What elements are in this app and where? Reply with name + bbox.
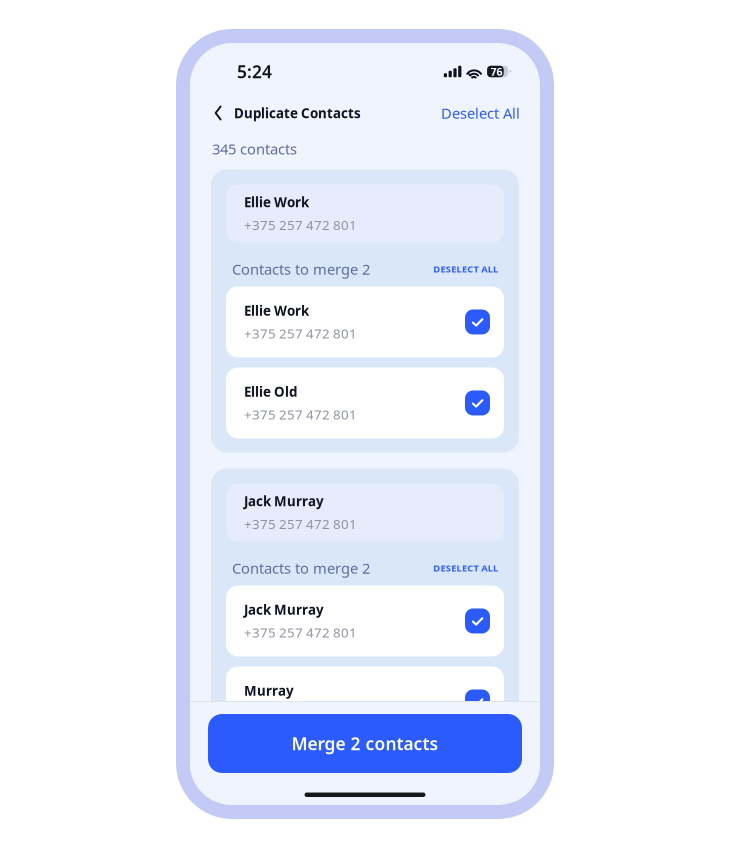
staticText: Duplicate Contacts (234, 104, 361, 122)
button[interactable]: Ellie Old (226, 367, 504, 438)
button[interactable]: Deselect contact (465, 309, 490, 334)
button[interactable]: DESELECT ALL (433, 263, 498, 275)
staticText: Ellie Work (244, 193, 309, 211)
button[interactable]: Jack Murray (226, 585, 504, 656)
button[interactable]: Ellie Work (226, 286, 504, 357)
staticText: +375 257 472 801 (244, 405, 357, 423)
button[interactable]: Jack Murray (226, 483, 504, 541)
staticText: 345 contacts (212, 139, 297, 158)
staticText: Ellie Old (244, 383, 297, 400)
staticText: Jack Murray (244, 492, 324, 510)
button[interactable]: Merge 2 contacts (208, 714, 522, 773)
staticText: Ellie Work (244, 302, 309, 319)
staticText: Merge 2 contacts (291, 732, 438, 755)
button[interactable]: Back (210, 98, 227, 128)
staticText: DESELECT ALL (433, 562, 498, 574)
staticText: +375 257 472 801 (244, 623, 357, 641)
button[interactable]: Ellie Work (226, 184, 504, 242)
staticText: DESELECT ALL (433, 263, 498, 275)
button[interactable]: DESELECT ALL (433, 562, 498, 574)
staticText: 76 (491, 64, 503, 79)
button[interactable]: Murray (226, 666, 504, 737)
staticText: +375 257 472 801 (244, 216, 357, 234)
staticText: Jack Murray (244, 601, 324, 618)
staticText: +375 257 472 801 (244, 324, 357, 342)
staticText: +375 257 472 801 (244, 704, 357, 722)
staticText: Murray (244, 682, 294, 699)
staticText: +375 257 472 801 (244, 515, 357, 533)
staticText: 5:24 (237, 60, 272, 83)
button[interactable]: Deselect contact (465, 390, 490, 415)
staticText: Deselect All (441, 103, 520, 123)
staticText: Contacts to merge 2 (232, 259, 370, 279)
staticText: Contacts to merge 2 (232, 558, 370, 578)
button[interactable]: Deselect All (441, 103, 520, 123)
button[interactable]: Deselect contact (465, 689, 490, 714)
button[interactable]: Deselect contact (465, 608, 490, 633)
